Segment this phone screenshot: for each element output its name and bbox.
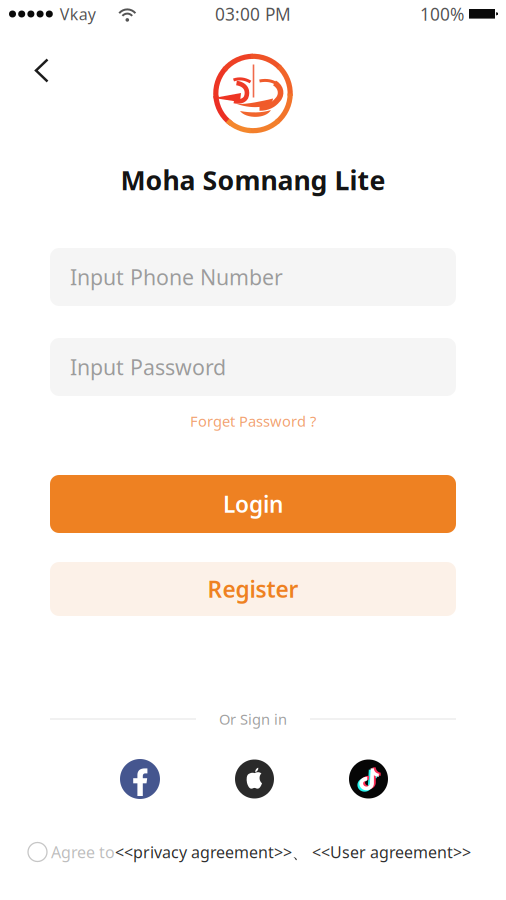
staticText: Login bbox=[223, 489, 283, 519]
staticText: 03:00 PM bbox=[215, 2, 291, 25]
button[interactable]: Register bbox=[50, 562, 456, 616]
staticText: Input Password bbox=[70, 353, 226, 381]
button[interactable]: Forget Password ? bbox=[190, 412, 316, 430]
button[interactable]: Login bbox=[50, 475, 456, 533]
staticText: Or Sign in bbox=[219, 709, 287, 729]
button[interactable]: Agree to terms bbox=[28, 842, 47, 861]
staticText: Register bbox=[207, 574, 298, 604]
button[interactable]: Sign in with TikTok bbox=[349, 759, 388, 798]
staticText: 100% bbox=[420, 2, 464, 25]
staticText: Input Phone Number bbox=[70, 263, 283, 291]
staticText: Agree to bbox=[47, 841, 115, 863]
staticText: Forget Password ? bbox=[190, 411, 316, 431]
staticText: <<privacy agreement>>、 bbox=[115, 841, 308, 863]
button[interactable]: Sign in with Apple bbox=[235, 759, 274, 798]
button[interactable]: Sign in with Facebook bbox=[120, 759, 160, 799]
staticText: Vkay bbox=[60, 3, 96, 25]
button[interactable]: Back bbox=[0, 52, 64, 135]
staticText: <<User agreement>> bbox=[308, 841, 471, 863]
staticText: Moha Somnang Lite bbox=[120, 162, 385, 198]
